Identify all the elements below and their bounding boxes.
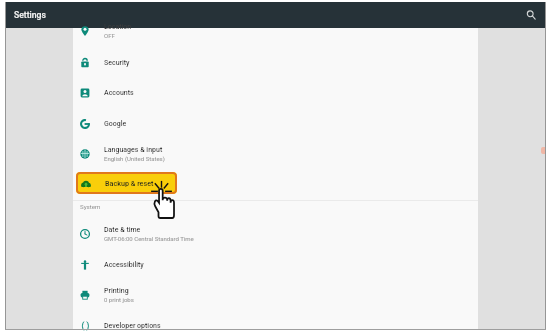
staticText: Date & time [104,226,141,234]
staticText: Backup & reset [105,179,154,187]
staticText: Security [104,59,130,67]
staticText: Accounts [104,89,134,97]
staticText: English (United States) [104,155,165,162]
staticText: Developer options [104,322,161,330]
button[interactable]: Accessibility [73,250,478,280]
staticText: Settings [14,10,46,20]
button[interactable]: Google [73,109,478,139]
button[interactable]: Search [520,4,542,26]
staticText: Accessibility [104,261,144,269]
button[interactable]: Printing [73,280,478,310]
staticText: OFF [104,32,115,39]
button[interactable]: Location [73,16,478,46]
staticText: 0 print jobs [104,296,134,303]
button[interactable]: Languages & input [73,139,478,169]
staticText: GMT-06:00 Central Standard Time [104,235,194,242]
button[interactable]: Security [73,48,478,78]
button[interactable]: Date & time [73,219,478,249]
staticText: Languages & input [104,146,163,154]
staticText: Location [104,23,132,31]
staticText: Printing [104,287,129,295]
staticText: Google [104,120,127,128]
button[interactable]: Backup & reset [76,172,177,194]
staticText: System [80,203,101,210]
button[interactable]: Accounts [73,78,478,108]
button[interactable]: Developer options [73,311,478,333]
